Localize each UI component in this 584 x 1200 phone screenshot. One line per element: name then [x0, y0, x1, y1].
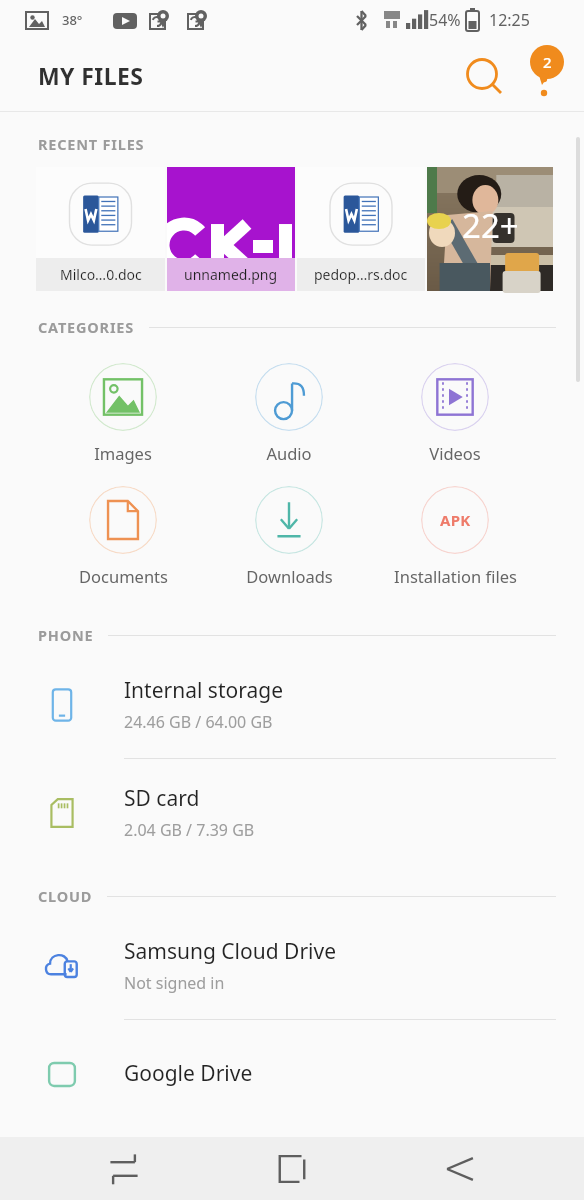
button[interactable]: Home: [260, 1137, 324, 1200]
staticText: PHONE: [38, 625, 94, 645]
button[interactable]: Videos: [372, 363, 538, 464]
staticText: CLOUD: [38, 886, 93, 906]
staticText: pedop…rs.doc: [314, 265, 408, 284]
button[interactable]: Documents: [40, 486, 206, 587]
button[interactable]: Images: [40, 363, 206, 464]
staticText: 22+: [462, 203, 519, 248]
staticText: CATEGORIES: [38, 317, 135, 337]
staticText: APK: [440, 510, 471, 530]
staticText: Samsung Cloud Drive: [124, 937, 337, 966]
button[interactable]: Google Drive: [0, 1020, 584, 1127]
staticText: Google Drive: [124, 1059, 253, 1088]
staticText: 38°: [62, 11, 83, 29]
button[interactable]: 22+: [427, 167, 553, 291]
staticText: 2.04 GB / 7.39 GB: [124, 819, 255, 841]
staticText: Not signed in: [124, 972, 225, 994]
staticText: 54%: [429, 9, 461, 31]
button[interactable]: APK: [372, 486, 538, 587]
button[interactable]: unnamed.png: [167, 167, 295, 291]
staticText: Downloads: [246, 565, 333, 587]
button[interactable]: Internal storage: [0, 651, 584, 759]
staticText: Documents: [79, 565, 168, 587]
staticText: Installation files: [394, 565, 517, 587]
staticText: Audio: [266, 442, 312, 464]
button[interactable]: Recents: [92, 1137, 156, 1200]
button[interactable]: Search: [456, 48, 512, 104]
staticText: Internal storage: [124, 676, 283, 705]
button[interactable]: Back: [428, 1137, 492, 1200]
staticText: unnamed.png: [184, 265, 278, 284]
button[interactable]: Audio: [206, 363, 372, 464]
staticText: 2: [543, 52, 552, 72]
button[interactable]: Downloads: [206, 486, 372, 587]
button[interactable]: Milco…0.doc: [36, 167, 165, 291]
staticText: MY FILES: [38, 60, 144, 91]
staticText: SD card: [124, 784, 200, 813]
staticText: Milco…0.doc: [60, 265, 142, 284]
staticText: Images: [94, 442, 152, 464]
staticText: 12:25: [489, 9, 530, 31]
staticText: RECENT FILES: [38, 134, 145, 154]
staticText: Videos: [429, 442, 481, 464]
button[interactable]: SD card: [0, 759, 584, 866]
button[interactable]: Samsung Cloud Drive: [0, 912, 584, 1020]
button[interactable]: pedop…rs.doc: [297, 167, 425, 291]
button[interactable]: More options: [516, 48, 572, 104]
staticText: 24.46 GB / 64.00 GB: [124, 711, 273, 733]
